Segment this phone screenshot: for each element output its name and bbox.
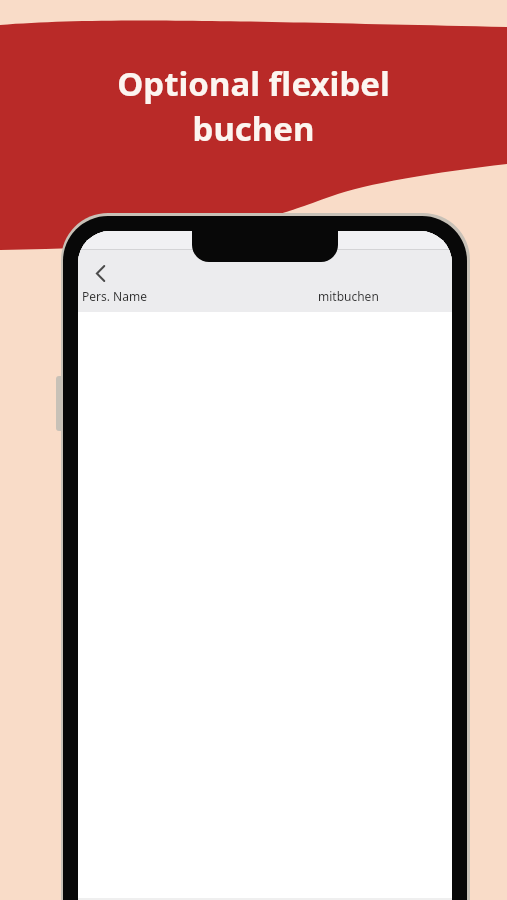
staticText: mitbuchen	[318, 288, 379, 304]
staticText: Pers. Name	[82, 288, 147, 304]
button[interactable]: mitbuchen	[314, 284, 418, 308]
button[interactable]: Back	[84, 257, 116, 289]
staticText: Optional flexibel buchen	[0, 61, 507, 900]
button[interactable]: Pers. Name	[78, 284, 228, 308]
